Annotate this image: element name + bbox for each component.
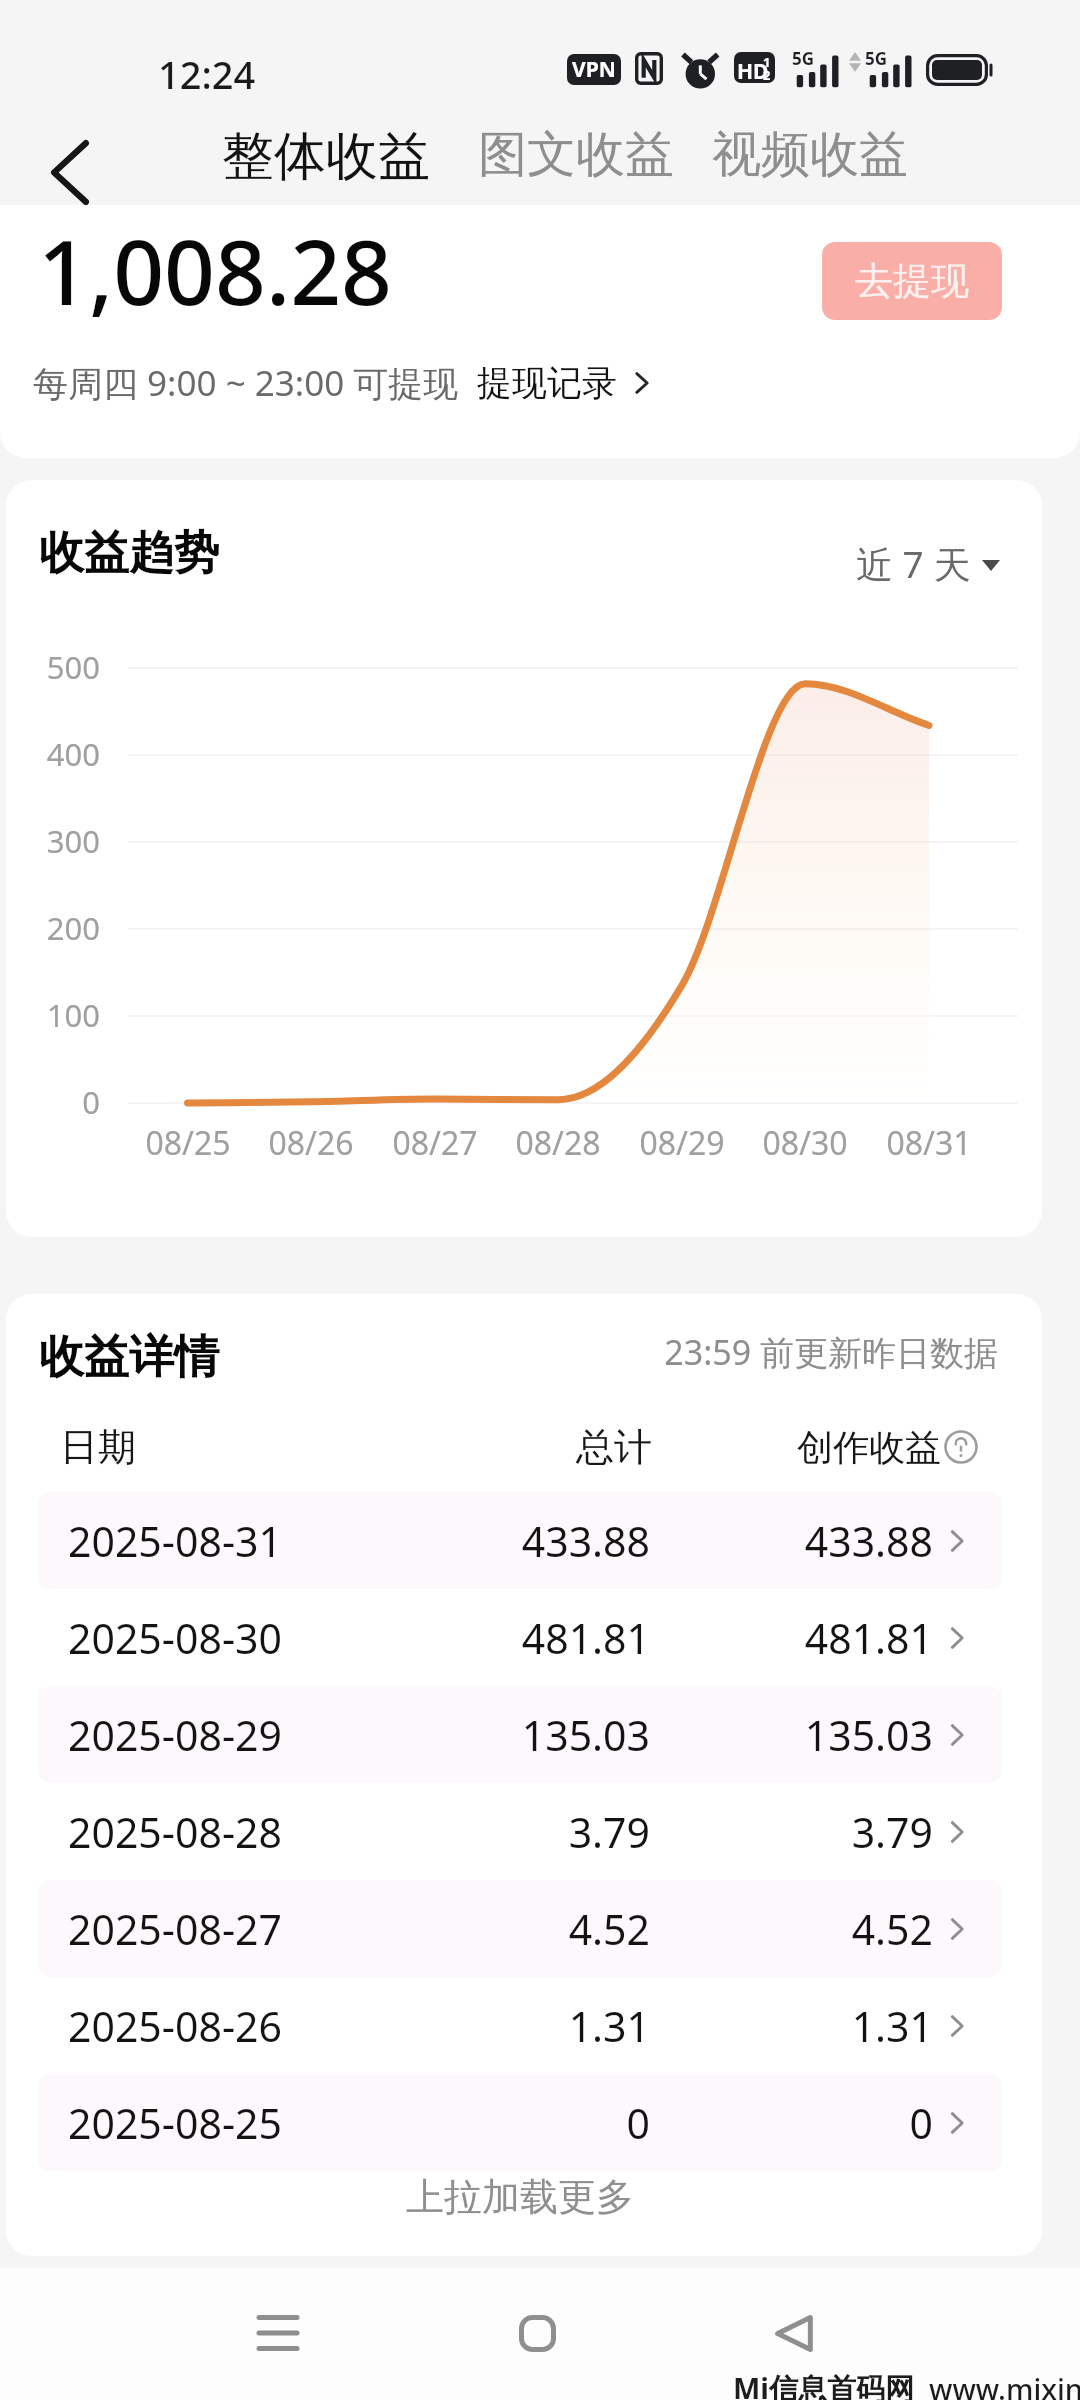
staticText: 3.79	[350, 1804, 650, 1860]
button[interactable]: 2025-08-30	[38, 1589, 1002, 1686]
staticText: 收益趋势	[39, 525, 219, 582]
staticText: 08/28	[498, 1121, 618, 1165]
staticText: 4.52	[633, 1901, 933, 1957]
button[interactable]: 2025-08-27	[38, 1880, 1002, 1977]
staticText: 视频收益	[712, 124, 908, 184]
button[interactable]: 提现记录	[477, 355, 655, 411]
staticText: 1.31	[350, 1998, 650, 2054]
button[interactable]: Recent apps	[223, 2278, 333, 2388]
staticText: 08/29	[622, 1121, 742, 1165]
button[interactable]: 去提现	[822, 242, 1002, 320]
staticText: HD	[737, 57, 769, 83]
staticText: 整体收益	[222, 124, 430, 184]
staticText: 433.88	[350, 1513, 650, 1569]
staticText: 2025-08-30	[68, 1610, 283, 1666]
button[interactable]: 2025-08-31	[38, 1492, 1002, 1589]
staticText: 481.81	[633, 1610, 933, 1666]
button[interactable]: 2025-08-26	[38, 1977, 1002, 2074]
staticText: 上拉加载更多	[406, 2173, 634, 2221]
staticText: www.mixinxi.com	[929, 2369, 1080, 2400]
button[interactable]: 2025-08-25	[38, 2074, 1002, 2171]
button[interactable]: Back	[739, 2278, 849, 2388]
staticText: 08/30	[745, 1121, 865, 1165]
staticText: 2025-08-31	[68, 1513, 283, 1569]
button[interactable]: Home	[482, 2278, 592, 2388]
staticText: 日期	[60, 1423, 136, 1471]
staticText: 图文收益	[478, 124, 674, 184]
staticText: 481.81	[350, 1610, 650, 1666]
staticText: 创作收益	[797, 1425, 941, 1470]
staticText: 1,008.28	[38, 210, 392, 331]
staticText: 2025-08-28	[68, 1804, 283, 1860]
staticText: 0	[350, 2095, 650, 2151]
staticText: 收益详情	[39, 1329, 219, 1386]
staticText: 1	[763, 53, 771, 71]
staticText: 2	[763, 66, 771, 83]
staticText: 2025-08-29	[68, 1707, 283, 1763]
button[interactable]: 图文收益	[476, 110, 676, 198]
staticText: 12:24	[158, 48, 256, 100]
staticText: 2025-08-25	[68, 2095, 283, 2151]
staticText: 433.88	[633, 1513, 933, 1569]
staticText: 3.79	[633, 1804, 933, 1860]
staticText: 08/31	[869, 1121, 989, 1165]
staticText: 提现记录	[477, 361, 617, 405]
staticText: 300	[6, 820, 100, 862]
staticText: VPN	[572, 55, 616, 84]
staticText: 5G	[865, 47, 888, 70]
staticText: 近 7 天	[856, 538, 971, 589]
button[interactable]: 2025-08-29	[38, 1686, 1002, 1783]
staticText: 去提现	[855, 257, 969, 305]
staticText: Mi信息首码网	[733, 2368, 915, 2400]
staticText: 08/27	[375, 1121, 495, 1165]
staticText: 0	[633, 2095, 933, 2151]
staticText: 4.52	[350, 1901, 650, 1957]
staticText: 500	[6, 646, 100, 688]
button[interactable]: Back	[20, 122, 120, 202]
staticText: 135.03	[633, 1707, 933, 1763]
staticText: 0	[6, 1081, 100, 1123]
staticText: 2025-08-27	[68, 1901, 283, 1957]
staticText: 5G	[792, 47, 815, 70]
staticText: 总计	[352, 1423, 652, 1471]
staticText: 100	[6, 994, 100, 1036]
staticText: 08/25	[128, 1121, 248, 1165]
staticText: 200	[6, 907, 100, 949]
staticText: 23:59 前更新昨日数据	[6, 1329, 998, 1375]
staticText: 2025-08-26	[68, 1998, 283, 2054]
staticText: 1.31	[633, 1998, 933, 2054]
button[interactable]: 2025-08-28	[38, 1783, 1002, 1880]
staticText: 400	[6, 733, 100, 775]
button[interactable]: 整体收益	[220, 110, 432, 198]
staticText: 135.03	[350, 1707, 650, 1763]
button[interactable]: 视频收益	[710, 110, 910, 198]
button[interactable]: 近 7 天	[852, 534, 1004, 593]
staticText: 每周四 9:00 ~ 23:00 可提现	[33, 359, 459, 407]
staticText: 08/26	[251, 1121, 371, 1165]
